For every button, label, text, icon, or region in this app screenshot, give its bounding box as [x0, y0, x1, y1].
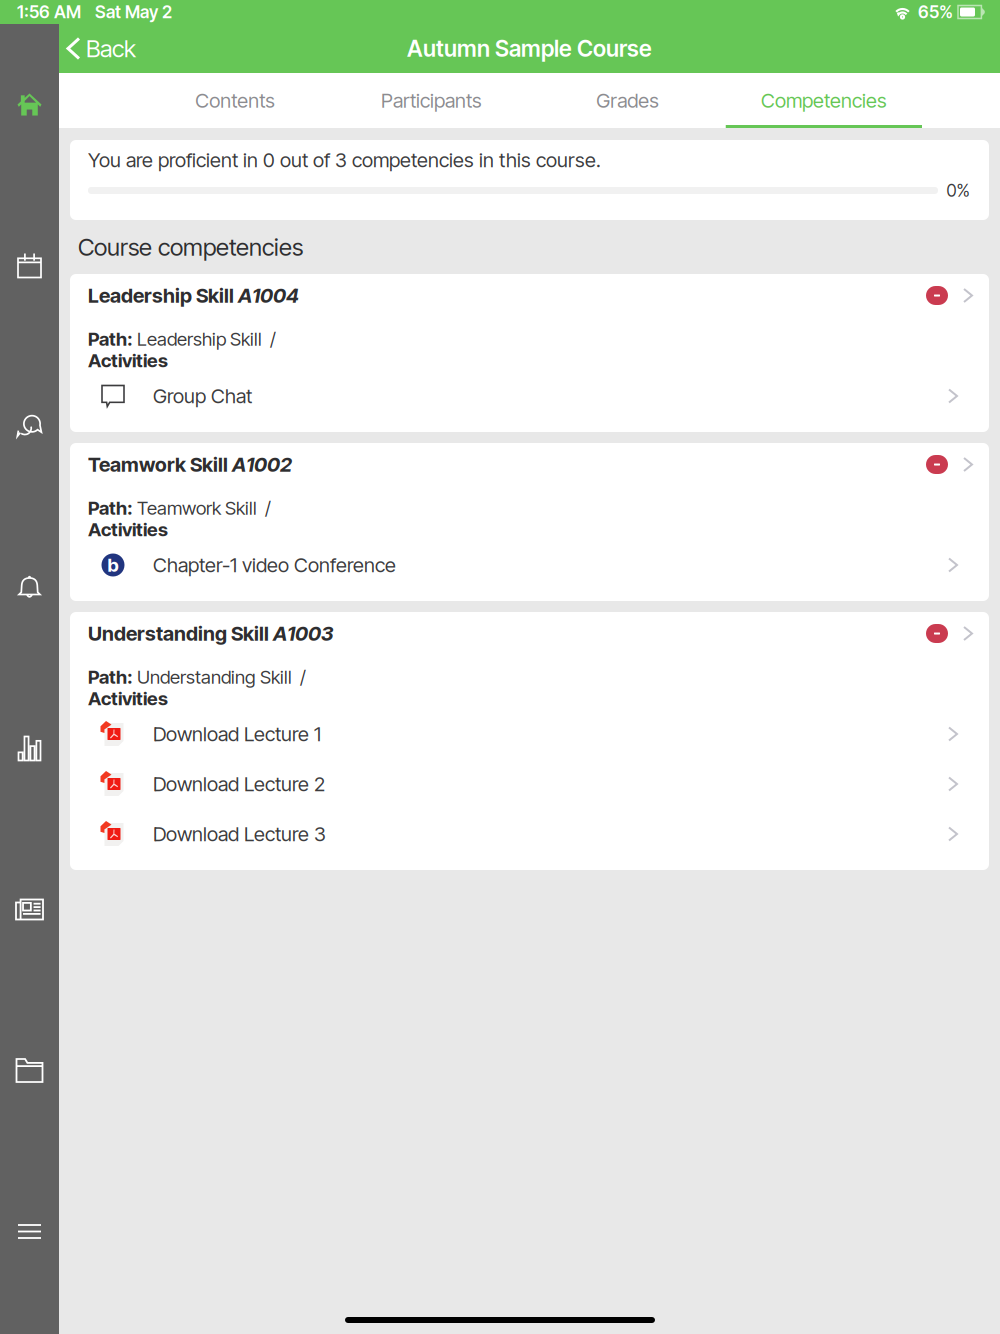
- button[interactable]: Notifications: [0, 507, 59, 668]
- staticText: Leadership Skill: [88, 283, 238, 308]
- button[interactable]: Leadership Skill: [70, 274, 989, 317]
- button[interactable]: Download Lecture 2: [70, 759, 989, 809]
- staticText: b: [107, 554, 118, 576]
- button[interactable]: Grades: [0, 668, 59, 829]
- staticText: Sat May 2: [95, 1, 172, 22]
- button[interactable]: News: [0, 829, 59, 990]
- button[interactable]: Teamwork Skill: [70, 443, 989, 486]
- staticText: Path:: [88, 328, 137, 350]
- staticText: Download Lecture 2: [153, 772, 325, 796]
- staticText: Understanding Skill /: [137, 666, 306, 688]
- button[interactable]: Grades: [529, 73, 726, 128]
- staticText: Path:: [88, 497, 137, 519]
- staticText: Grades: [596, 88, 659, 113]
- staticText: Participants: [381, 88, 482, 113]
- staticText: Activities: [88, 349, 168, 372]
- staticText: Autumn Sample Course: [407, 35, 652, 62]
- staticText: Competencies: [761, 88, 887, 113]
- button[interactable]: Back: [59, 24, 150, 73]
- staticText: Chapter-1 video Conference: [153, 553, 396, 577]
- button[interactable]: Home: [0, 24, 59, 185]
- button[interactable]: Contents: [137, 73, 333, 128]
- staticText: Back: [86, 34, 136, 63]
- staticText: 0%: [946, 180, 969, 201]
- staticText: Teamwork Skill /: [137, 497, 271, 519]
- button[interactable]: Files: [0, 990, 59, 1151]
- staticText: 1:56 AM: [17, 1, 81, 22]
- button[interactable]: Calendar: [0, 185, 59, 346]
- button[interactable]: b: [70, 540, 989, 590]
- button[interactable]: Competencies: [726, 73, 922, 128]
- staticText: Path:: [88, 666, 137, 688]
- button[interactable]: Participants: [333, 73, 529, 128]
- staticText: Download Lecture 1: [153, 722, 321, 746]
- staticText: 65%: [918, 1, 953, 22]
- staticText: Contents: [195, 88, 275, 113]
- button[interactable]: Download Lecture 1: [70, 709, 989, 759]
- staticText: Course competencies: [78, 232, 303, 261]
- button[interactable]: Group Chat: [70, 371, 989, 421]
- button[interactable]: More: [0, 1151, 59, 1312]
- staticText: A1002: [232, 452, 292, 477]
- staticText: A1003: [273, 621, 334, 646]
- button[interactable]: Understanding Skill: [70, 612, 989, 655]
- staticText: Teamwork Skill: [88, 452, 232, 477]
- staticText: Leadership Skill /: [137, 328, 276, 350]
- staticText: Download Lecture 3: [153, 822, 326, 846]
- staticText: Activities: [88, 687, 168, 710]
- staticText: A1004: [238, 283, 299, 308]
- button[interactable]: Download Lecture 3: [70, 809, 989, 859]
- staticText: Group Chat: [153, 384, 252, 408]
- button[interactable]: Messages: [0, 346, 59, 507]
- staticText: You are proficient in 0 out of 3 compete…: [88, 148, 601, 172]
- staticText: Activities: [88, 518, 168, 541]
- staticText: Understanding Skill: [88, 621, 273, 646]
